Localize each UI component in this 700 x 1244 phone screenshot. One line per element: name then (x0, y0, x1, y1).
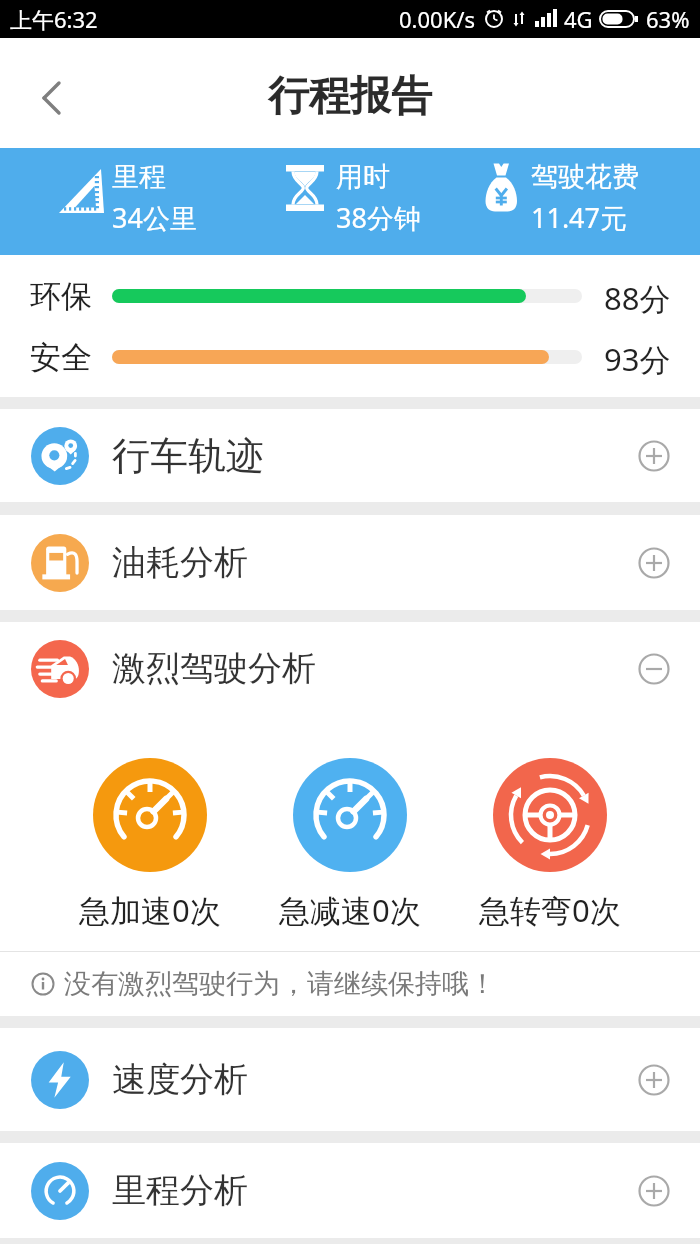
staticText: 11.47元 (531, 199, 628, 236)
staticText: 行程报告 (268, 71, 432, 123)
staticText: 急加速0次 (79, 889, 221, 931)
staticText: 用时 (336, 160, 390, 194)
button[interactable]: 速度分析 (0, 1028, 700, 1131)
staticText: 没有激烈驾驶行为，请继续保持哦！ (64, 967, 496, 1001)
staticText: 34公里 (112, 199, 197, 236)
staticText: 38分钟 (336, 199, 421, 236)
staticText: 93分 (604, 338, 671, 380)
button[interactable]: 行车轨迹 (0, 409, 700, 502)
staticText: 里程 (112, 160, 166, 194)
staticText: 0.00K/s (399, 4, 475, 34)
staticText: 驾驶花费 (531, 160, 639, 194)
button[interactable]: 里程分析 (0, 1143, 700, 1238)
staticText: 63% (646, 4, 690, 34)
staticText: 上午6:32 (10, 4, 98, 34)
staticText: 安全 (30, 338, 92, 377)
staticText: 行车轨迹 (112, 432, 264, 480)
staticText: 速度分析 (112, 1058, 248, 1101)
staticText: 油耗分析 (112, 541, 248, 584)
button[interactable] (24, 70, 80, 126)
staticText: 环保 (30, 277, 92, 316)
staticText: 激烈驾驶分析 (112, 647, 316, 690)
staticText: 88分 (604, 277, 671, 319)
staticText: 4G (564, 4, 593, 34)
staticText: 里程分析 (112, 1169, 248, 1212)
button[interactable]: 激烈驾驶分析 (0, 622, 700, 715)
staticText: 急转弯0次 (479, 889, 621, 931)
staticText: 急减速0次 (279, 889, 421, 931)
button[interactable]: 油耗分析 (0, 515, 700, 610)
